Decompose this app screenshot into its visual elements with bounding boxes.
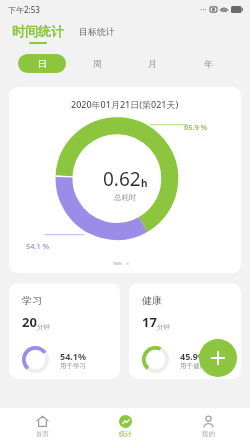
button[interactable]: 月 xyxy=(128,54,176,73)
button[interactable]: 目标统计 xyxy=(77,28,117,39)
staticText: 学习 xyxy=(22,294,42,307)
staticText: 54.1 % xyxy=(26,241,50,251)
staticText: 用于健康 xyxy=(180,362,206,370)
button[interactable]: 时间统计 xyxy=(11,23,65,44)
staticText: 65.9 % xyxy=(184,122,208,132)
button[interactable]: 首页 xyxy=(0,408,84,444)
staticText: 年 xyxy=(204,58,213,69)
button[interactable]: 健康 xyxy=(129,283,241,379)
staticText: 统计 xyxy=(119,430,132,438)
button[interactable]: 年 xyxy=(184,54,232,73)
staticText: 2020年01月21日(第021天) xyxy=(71,98,179,110)
button[interactable]: 统计 xyxy=(84,408,167,444)
button[interactable]: 日 xyxy=(18,54,66,73)
staticText: 目标统计 xyxy=(79,26,115,37)
staticText: 时间统计 xyxy=(12,23,64,39)
button[interactable]: 我的 xyxy=(167,408,250,444)
staticText: 54.1% xyxy=(60,350,87,362)
button[interactable]: 学习 xyxy=(9,283,120,379)
staticText: 下午2:53 xyxy=(8,4,40,15)
button[interactable]: Add xyxy=(199,339,237,377)
staticText: 20 xyxy=(22,313,37,331)
staticText: 我的 xyxy=(202,430,215,438)
staticText: 月 xyxy=(148,58,157,69)
button[interactable]: 2020年01月21日(第021天) xyxy=(9,87,241,273)
staticText: 分钟 xyxy=(37,323,50,331)
button[interactable]: 周 xyxy=(73,54,121,73)
staticText: 0.62 xyxy=(103,166,141,192)
staticText: 周 xyxy=(93,58,102,69)
staticText: 日 xyxy=(38,58,47,69)
staticText: 首页 xyxy=(36,430,49,438)
staticText: 健康 xyxy=(142,294,162,307)
staticText: 17 xyxy=(142,313,157,331)
staticText: 用于学习 xyxy=(60,362,86,370)
staticText: 总耗时 xyxy=(114,193,137,202)
staticText: 45.9% xyxy=(180,350,207,362)
staticText: 分钟 xyxy=(157,323,170,331)
staticText: h xyxy=(141,176,148,190)
staticText: ··· xyxy=(200,4,207,15)
